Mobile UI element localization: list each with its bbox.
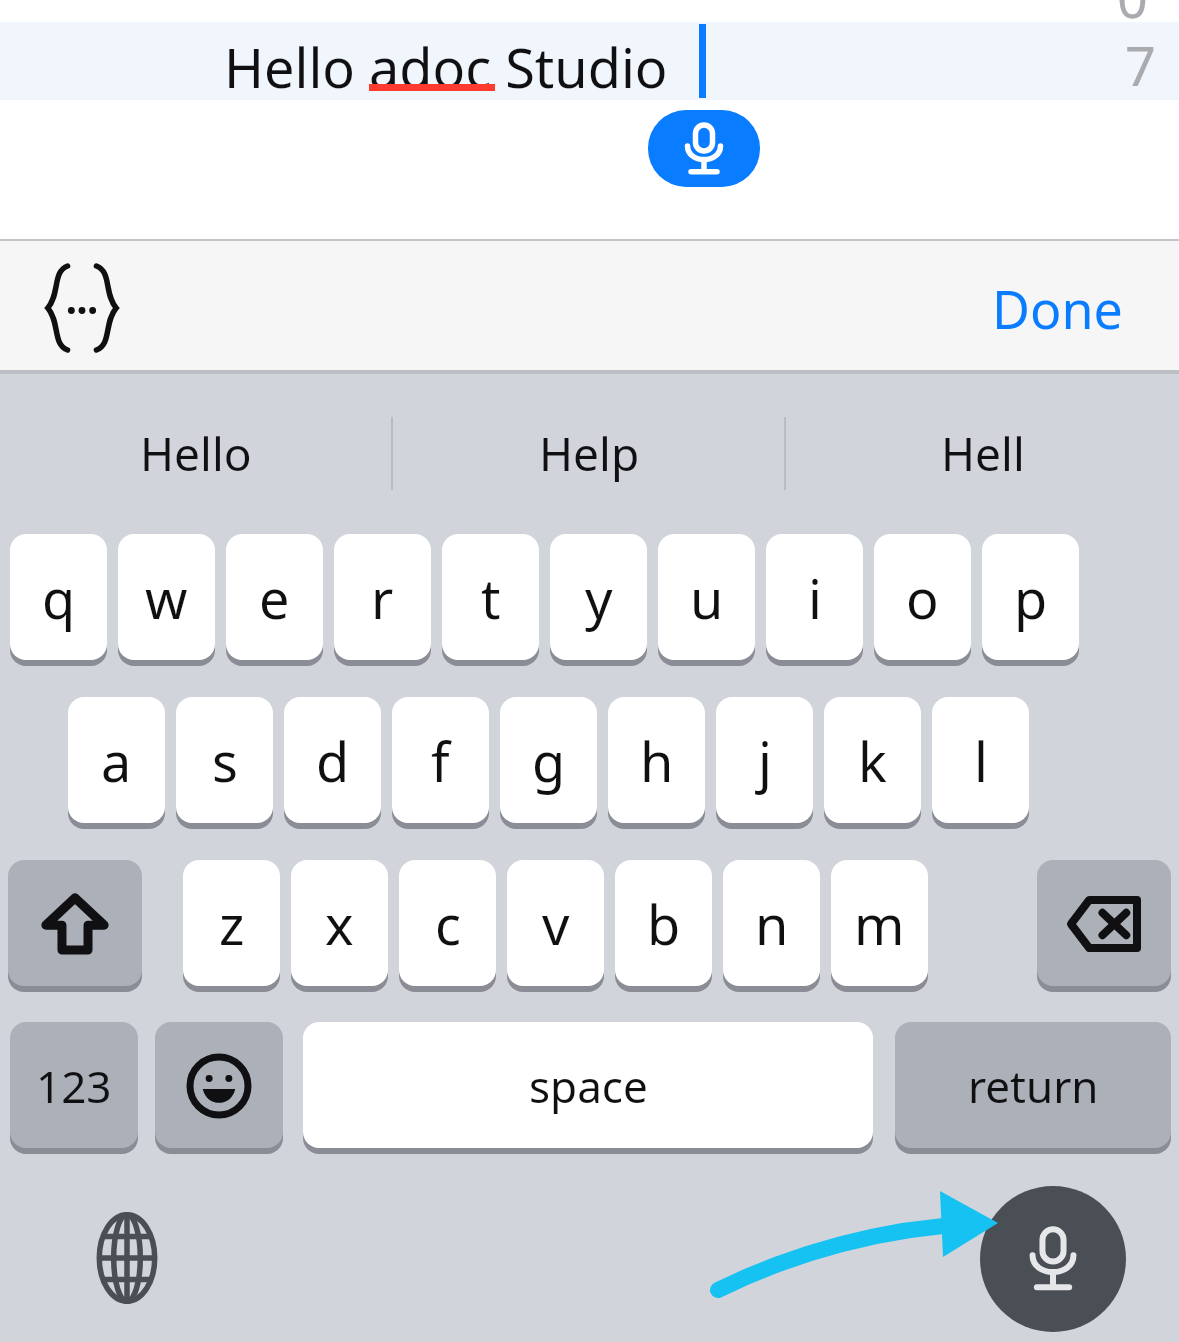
- staticText: t: [481, 561, 501, 635]
- button[interactable]: Done: [985, 262, 1130, 354]
- button[interactable]: Hell: [833, 398, 1133, 508]
- button[interactable]: w: [118, 534, 215, 662]
- button[interactable]: Next keyboard: [72, 1203, 182, 1313]
- button[interactable]: m: [831, 860, 928, 988]
- staticText: r: [371, 561, 394, 635]
- button[interactable]: s: [176, 697, 273, 825]
- staticText: k: [858, 724, 887, 798]
- button[interactable]: v: [507, 860, 604, 988]
- button[interactable]: Dictate: [648, 110, 760, 187]
- staticText: w: [145, 561, 188, 635]
- staticText: a: [101, 724, 132, 798]
- staticText: y: [585, 561, 613, 635]
- staticText: d: [316, 724, 350, 798]
- staticText: f: [431, 724, 450, 798]
- staticText: n: [755, 887, 789, 961]
- button[interactable]: h: [608, 697, 705, 825]
- button[interactable]: b: [615, 860, 712, 988]
- button[interactable]: c: [399, 860, 496, 988]
- staticText: c: [435, 887, 461, 961]
- button[interactable]: d: [284, 697, 381, 825]
- button[interactable]: i: [766, 534, 863, 662]
- staticText: e: [259, 561, 290, 635]
- staticText: Help: [539, 422, 640, 485]
- staticText: z: [219, 887, 245, 961]
- button[interactable]: [0, 22, 1179, 100]
- button[interactable]: k: [824, 697, 921, 825]
- staticText: q: [42, 561, 76, 635]
- staticText: o: [906, 561, 939, 635]
- staticText: 0: [1117, 0, 1148, 34]
- button[interactable]: Dictation: [980, 1186, 1126, 1332]
- staticText: s: [212, 724, 238, 798]
- button[interactable]: Hello: [46, 398, 346, 508]
- staticText: l: [974, 724, 988, 798]
- button[interactable]: a: [68, 697, 165, 825]
- staticText: i: [808, 561, 822, 635]
- staticText: return: [968, 1056, 1099, 1116]
- staticText: v: [542, 887, 570, 961]
- staticText: 123: [36, 1056, 112, 1116]
- button[interactable]: x: [291, 860, 388, 988]
- button[interactable]: Snippets: [36, 262, 128, 354]
- staticText: m: [854, 887, 905, 961]
- button[interactable]: r: [334, 534, 431, 662]
- staticText: 7: [1125, 28, 1156, 102]
- button[interactable]: e: [226, 534, 323, 662]
- button[interactable]: z: [183, 860, 280, 988]
- staticText: Done: [992, 273, 1123, 344]
- staticText: Hello adoc Studio: [224, 30, 668, 104]
- button[interactable]: l: [932, 697, 1029, 825]
- staticText: space: [529, 1056, 648, 1116]
- button[interactable]: u: [658, 534, 755, 662]
- staticText: x: [325, 887, 354, 961]
- button[interactable]: Shift: [8, 860, 142, 988]
- button[interactable]: g: [500, 697, 597, 825]
- button[interactable]: Backspace: [1037, 860, 1171, 988]
- button[interactable]: p: [982, 534, 1079, 662]
- staticText: j: [758, 724, 772, 798]
- staticText: b: [647, 887, 681, 961]
- staticText: Hello: [140, 422, 252, 485]
- button[interactable]: j: [716, 697, 813, 825]
- button[interactable]: 123: [10, 1022, 138, 1150]
- button[interactable]: Emoji: [155, 1022, 283, 1150]
- staticText: u: [690, 561, 724, 635]
- button[interactable]: o: [874, 534, 971, 662]
- button[interactable]: Help: [439, 398, 739, 508]
- button[interactable]: f: [392, 697, 489, 825]
- button[interactable]: y: [550, 534, 647, 662]
- staticText: Hell: [941, 422, 1025, 485]
- staticText: g: [532, 724, 566, 798]
- button[interactable]: return: [895, 1022, 1171, 1150]
- button[interactable]: space: [303, 1022, 873, 1150]
- staticText: p: [1014, 561, 1048, 635]
- button[interactable]: t: [442, 534, 539, 662]
- button[interactable]: n: [723, 860, 820, 988]
- staticText: h: [640, 724, 674, 798]
- button[interactable]: q: [10, 534, 107, 662]
